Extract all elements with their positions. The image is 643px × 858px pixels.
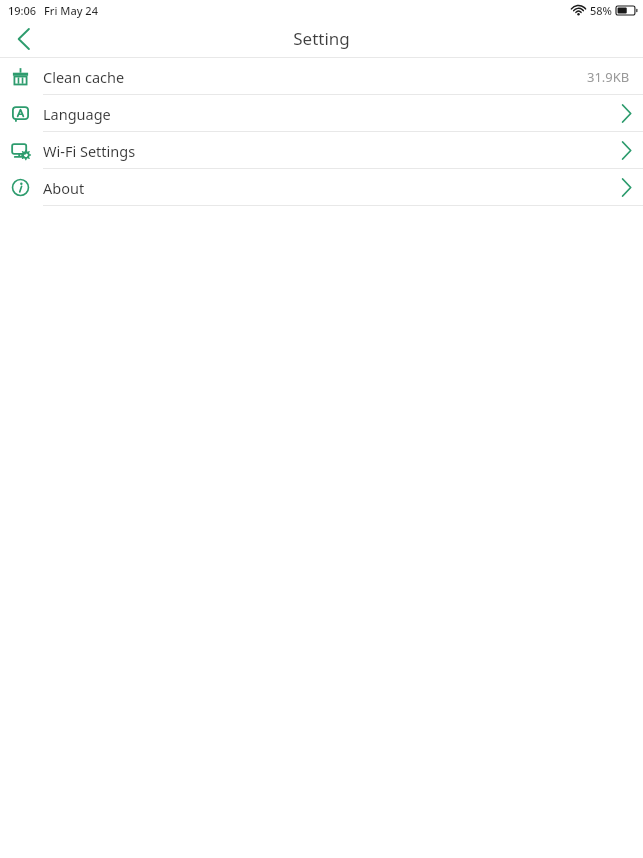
- button[interactable]: Back: [0, 20, 48, 58]
- staticText: About: [43, 178, 85, 198]
- staticText: Language: [43, 104, 111, 124]
- staticText: Fri May 24: [44, 3, 98, 18]
- staticText: 58%: [590, 3, 612, 18]
- staticText: 31.9KB: [587, 68, 630, 86]
- button[interactable]: Language: [0, 95, 643, 132]
- button[interactable]: Clean cache: [0, 58, 643, 95]
- staticText: Clean cache: [43, 67, 125, 87]
- button[interactable]: Wi-Fi Settings: [0, 132, 643, 169]
- staticText: Wi-Fi Settings: [43, 141, 136, 161]
- button[interactable]: About: [0, 169, 643, 206]
- staticText: 19:06: [8, 3, 37, 18]
- staticText: Setting: [293, 27, 350, 50]
